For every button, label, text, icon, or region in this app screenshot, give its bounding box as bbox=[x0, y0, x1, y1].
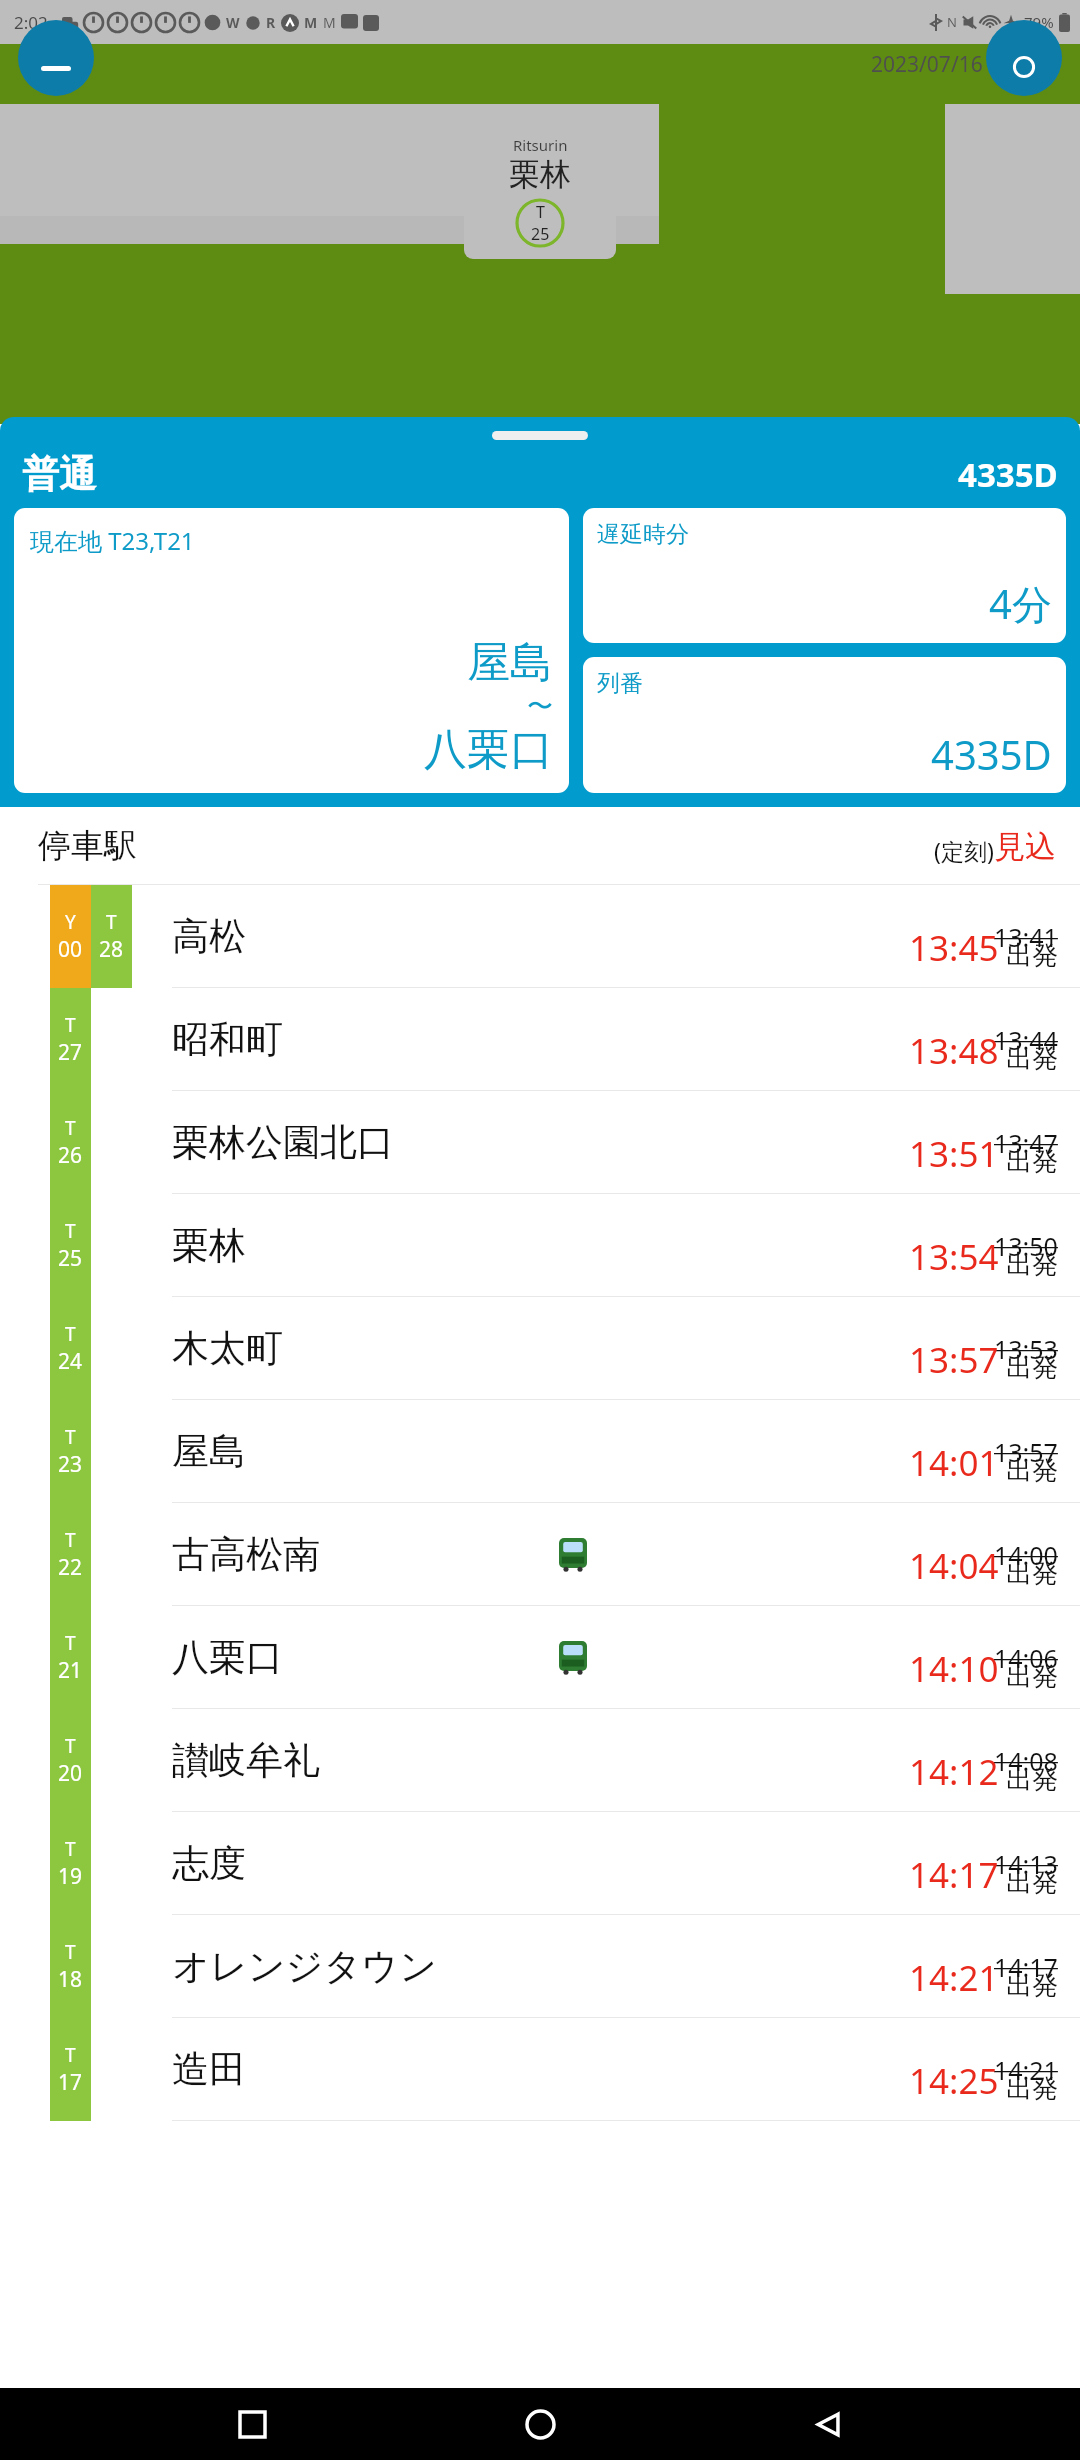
staticText: 13:45 bbox=[909, 924, 999, 972]
staticText: 25 bbox=[58, 1244, 83, 1273]
staticText: T bbox=[536, 201, 545, 223]
staticText: T bbox=[65, 1424, 76, 1450]
staticText: 14:01 bbox=[909, 1439, 999, 1487]
staticText: 14:13 bbox=[994, 1847, 1058, 1881]
staticText: T bbox=[65, 1012, 76, 1038]
staticText: 出発 bbox=[1006, 1557, 1058, 1590]
staticText: 〜 bbox=[527, 690, 553, 723]
staticText: 14:06 bbox=[994, 1641, 1058, 1675]
button[interactable]: T bbox=[0, 1091, 1080, 1194]
staticText: 17 bbox=[58, 2068, 83, 2097]
staticText: 停車駅 bbox=[38, 825, 137, 867]
staticText: 14:12 bbox=[909, 1748, 999, 1796]
button[interactable]: Zoom out bbox=[18, 20, 94, 96]
staticText: 見込 bbox=[994, 827, 1056, 866]
staticText: 13:54 bbox=[909, 1233, 999, 1281]
staticText: 13:53 bbox=[994, 1332, 1058, 1366]
staticText: 出発 bbox=[1006, 939, 1058, 972]
staticText: 79% bbox=[1024, 12, 1054, 32]
button[interactable]: T bbox=[0, 1503, 1080, 1606]
staticText: T bbox=[65, 1115, 76, 1141]
staticText: オレンジタウン bbox=[172, 1943, 438, 1990]
staticText: 出発 bbox=[1006, 1866, 1058, 1899]
button[interactable]: Ritsurin bbox=[464, 129, 616, 259]
button[interactable]: 列番 bbox=[583, 657, 1066, 793]
staticText: 13:57 bbox=[994, 1435, 1058, 1469]
staticText: 造田 bbox=[172, 2046, 246, 2093]
staticText: 屋島 bbox=[172, 1428, 246, 1475]
staticText: 高松 bbox=[172, 913, 246, 960]
staticText: T bbox=[106, 909, 117, 935]
staticText: 志度 bbox=[172, 1840, 246, 1887]
staticText: 13:51 bbox=[909, 1130, 999, 1178]
staticText: 八栗口 bbox=[172, 1634, 283, 1681]
staticText: 13:50 bbox=[994, 1229, 1058, 1263]
button[interactable]: 遅延時分 bbox=[583, 508, 1066, 643]
staticText: 14:25 bbox=[909, 2057, 999, 2105]
staticText: 14:21 bbox=[909, 1954, 999, 2002]
staticText: 13:41 bbox=[994, 920, 1058, 954]
staticText: 18 bbox=[58, 1965, 83, 1994]
button[interactable]: T bbox=[0, 1297, 1080, 1400]
staticText: 13:48 bbox=[909, 1027, 999, 1075]
staticText: 00 bbox=[58, 935, 83, 964]
staticText: Ritsurin bbox=[513, 135, 568, 155]
staticText: 昭和町 bbox=[172, 1016, 283, 1063]
staticText: 出発 bbox=[1006, 1763, 1058, 1796]
button[interactable]: Recents bbox=[216, 2388, 288, 2460]
button[interactable]: 現在地 T23,T21 bbox=[14, 508, 569, 793]
staticText: 26 bbox=[58, 1141, 83, 1170]
staticText: 28 bbox=[99, 935, 124, 964]
staticText: 14:17 bbox=[994, 1950, 1058, 1984]
button[interactable]: T bbox=[0, 1606, 1080, 1709]
staticText: 屋島 bbox=[467, 636, 553, 690]
staticText: 木太町 bbox=[172, 1325, 283, 1372]
staticText: 出発 bbox=[1006, 1145, 1058, 1178]
staticText: 4分 bbox=[989, 576, 1052, 631]
button[interactable]: T bbox=[0, 1812, 1080, 1915]
staticText: 4335D bbox=[958, 452, 1058, 497]
staticText: M bbox=[304, 13, 318, 32]
staticText: 14:17 bbox=[909, 1851, 999, 1899]
staticText: 出発 bbox=[1006, 1969, 1058, 2002]
staticText: 現在地 T23,T21 bbox=[30, 524, 195, 557]
staticText: Y bbox=[65, 909, 76, 935]
staticText: 19 bbox=[58, 1862, 83, 1891]
staticText: T bbox=[65, 1527, 76, 1553]
staticText: (定刻) bbox=[934, 835, 994, 866]
button[interactable]: Back bbox=[792, 2388, 864, 2460]
staticText: N bbox=[947, 13, 957, 31]
button[interactable]: T bbox=[0, 988, 1080, 1091]
staticText: 4335D bbox=[931, 727, 1052, 781]
staticText: 14:10 bbox=[909, 1645, 999, 1693]
button[interactable]: Y bbox=[0, 885, 1080, 988]
staticText: T bbox=[65, 1218, 76, 1244]
staticText: T bbox=[65, 1733, 76, 1759]
staticText: 遅延時分 bbox=[597, 520, 689, 549]
button[interactable]: T bbox=[0, 1400, 1080, 1503]
button[interactable]: T bbox=[0, 1194, 1080, 1297]
button[interactable]: My location bbox=[986, 20, 1062, 96]
staticText: 20 bbox=[58, 1759, 83, 1788]
staticText: 13:47 bbox=[994, 1126, 1058, 1160]
staticText: 出発 bbox=[1006, 2072, 1058, 2105]
staticText: 23 bbox=[58, 1450, 83, 1479]
staticText: 14:00 bbox=[994, 1538, 1058, 1572]
staticText: T bbox=[65, 1836, 76, 1862]
button[interactable]: T bbox=[0, 2018, 1080, 2121]
staticText: 14:21 bbox=[994, 2053, 1058, 2087]
staticText: 27 bbox=[58, 1038, 83, 1067]
staticText: 13:57 bbox=[909, 1336, 999, 1384]
staticText: 25 bbox=[531, 223, 550, 245]
staticText: 14:08 bbox=[994, 1744, 1058, 1778]
staticText: 13:44 bbox=[994, 1023, 1058, 1057]
button[interactable]: T bbox=[0, 1915, 1080, 2018]
staticText: R bbox=[266, 13, 276, 32]
staticText: 14:04 bbox=[909, 1542, 999, 1590]
button[interactable]: T bbox=[0, 1709, 1080, 1812]
button[interactable]: Home bbox=[504, 2388, 576, 2460]
staticText: M bbox=[323, 13, 336, 32]
staticText: W bbox=[226, 13, 240, 32]
staticText: 古高松南 bbox=[172, 1531, 320, 1578]
staticText: 出発 bbox=[1006, 1351, 1058, 1384]
